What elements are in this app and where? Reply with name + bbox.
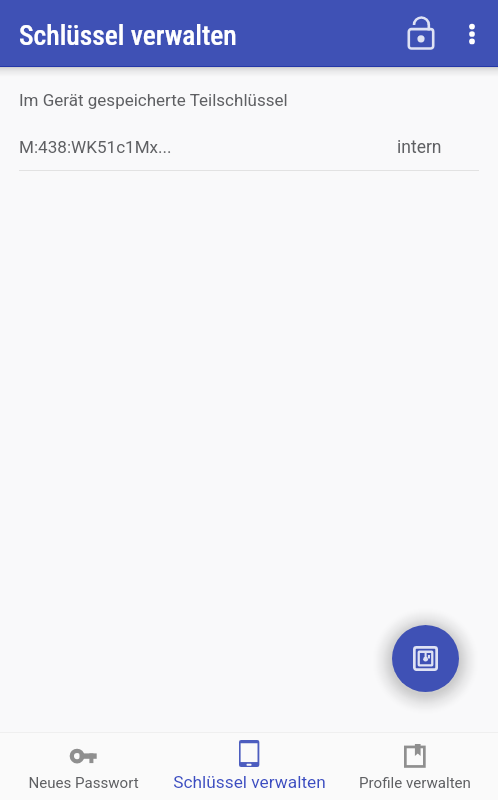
staticText: Schlüssel verwalten	[173, 772, 326, 792]
staticText: intern	[397, 137, 442, 158]
staticText: Im Gerät gespeicherte Teilschlüssel	[19, 90, 288, 110]
button[interactable]: NFC-Tag scannen	[392, 625, 459, 692]
staticText: Schlüssel verwalten	[19, 19, 237, 51]
button[interactable]: Profile verwalten	[332, 733, 498, 800]
button[interactable]: M:438:WK51c1Mx...	[0, 118, 498, 170]
staticText: M:438:WK51c1Mx...	[19, 137, 172, 157]
button[interactable]: Neues Passwort	[0, 733, 166, 800]
staticText: Neues Passwort	[28, 774, 139, 792]
button[interactable]: Entsperren	[397, 9, 445, 57]
button[interactable]: Weitere Optionen	[448, 10, 496, 58]
staticText: Profile verwalten	[359, 774, 471, 792]
button[interactable]: Schlüssel verwalten	[166, 733, 332, 800]
